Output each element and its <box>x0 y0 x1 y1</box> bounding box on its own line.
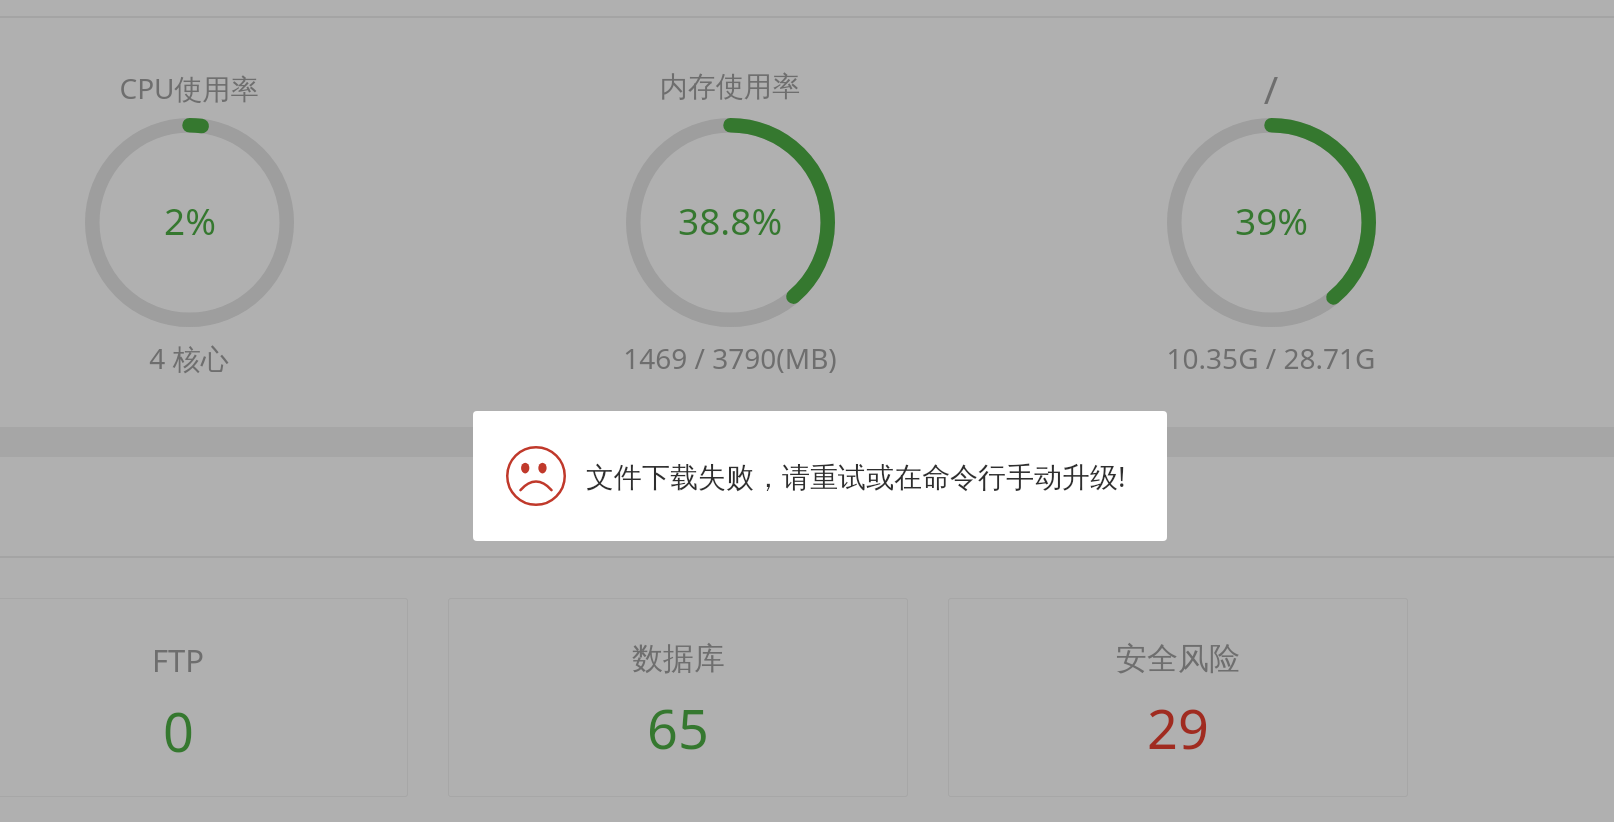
staticText: 2% <box>164 195 216 245</box>
button[interactable]: 安全风险 <box>948 598 1408 797</box>
staticText: 29 <box>1147 691 1209 765</box>
other: Error <box>506 445 568 507</box>
button[interactable]: Error <box>473 411 1167 541</box>
staticText: FTP <box>152 639 205 681</box>
button[interactable]: 内存使用率 <box>461 18 999 408</box>
button[interactable]: CPU使用率 <box>0 18 458 408</box>
staticText: 数据库 <box>632 639 725 678</box>
staticText: 文件下载失败，请重试或在命令行手动升级! <box>586 457 1126 495</box>
button[interactable]: FTP <box>0 598 408 797</box>
staticText: 内存使用率 <box>461 69 999 104</box>
staticText: 38.8% <box>678 195 783 245</box>
staticText: 0 <box>163 694 194 768</box>
staticText: 4 核心 <box>0 339 458 377</box>
staticText: CPU使用率 <box>0 69 458 107</box>
staticText: 39% <box>1235 195 1309 245</box>
button[interactable]: 数据库 <box>448 598 908 797</box>
button[interactable]: / <box>1002 18 1540 408</box>
staticText: 10.35G / 28.71G <box>1002 339 1540 377</box>
staticText: 1469 / 3790(MB) <box>461 339 999 377</box>
staticText: / <box>1002 62 1540 115</box>
staticText: 安全风险 <box>1116 639 1240 678</box>
staticText: 65 <box>647 691 709 765</box>
